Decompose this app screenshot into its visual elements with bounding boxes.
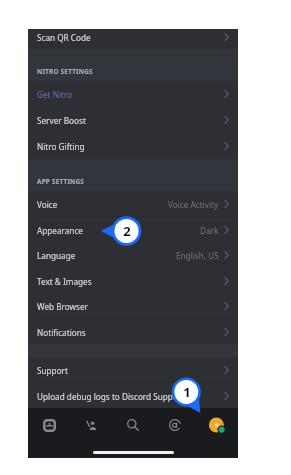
- button[interactable]: Text & Images: [28, 268, 238, 294]
- button[interactable]: Web Browser: [28, 293, 238, 319]
- button[interactable]: Voice: [28, 191, 238, 217]
- staticText: Server Boost: [37, 115, 86, 126]
- staticText: Web Browser: [37, 301, 88, 312]
- button[interactable]: Support: [28, 357, 238, 383]
- button[interactable]: Mentions: [154, 408, 196, 442]
- button[interactable]: Server Boost: [28, 107, 238, 133]
- staticText: English, US: [176, 250, 219, 261]
- staticText: Notifications: [37, 327, 86, 338]
- button[interactable]: Scan QR Code: [28, 29, 238, 50]
- button[interactable]: Upload debug logs to Discord Support: [28, 383, 238, 409]
- staticText: NITRO SETTINGS: [37, 67, 93, 76]
- staticText: Scan QR Code: [37, 32, 91, 43]
- staticText: Upload debug logs to Discord Support: [37, 391, 185, 402]
- staticText: Support: [37, 365, 68, 376]
- staticText: Voice Activity: [168, 199, 219, 210]
- button[interactable]: Messages: [28, 408, 70, 442]
- staticText: Get Nitro: [37, 89, 73, 100]
- staticText: Dark: [200, 225, 219, 236]
- staticText: Appearance: [37, 225, 83, 236]
- button[interactable]: Friends: [70, 408, 112, 442]
- button[interactable]: Search: [112, 408, 154, 442]
- staticText: 2: [123, 222, 131, 240]
- button[interactable]: Profile: [196, 408, 238, 442]
- button[interactable]: Notifications: [28, 319, 238, 345]
- button[interactable]: Language: [28, 242, 238, 268]
- staticText: Voice: [37, 199, 58, 210]
- button[interactable]: Nitro Gifting: [28, 133, 238, 159]
- staticText: APP SETTINGS: [37, 177, 85, 186]
- staticText: Text & Images: [37, 276, 92, 287]
- button[interactable]: Get Nitro: [28, 81, 238, 107]
- staticText: Language: [37, 250, 76, 261]
- staticText: Nitro Gifting: [37, 141, 85, 152]
- button[interactable]: Appearance: [28, 217, 238, 243]
- staticText: 1: [183, 383, 191, 401]
